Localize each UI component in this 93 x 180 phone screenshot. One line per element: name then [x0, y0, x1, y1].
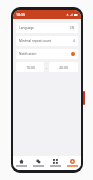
- staticText: 18:35: [16, 12, 25, 17]
- staticText: 10:00: [26, 65, 35, 70]
- button[interactable]: Settings: [64, 156, 81, 170]
- staticText: 4: [73, 39, 75, 43]
- button[interactable]: Minimal repeat count: [16, 36, 78, 46]
- button[interactable]: Two circles: [30, 156, 47, 170]
- staticText: -: [46, 65, 48, 70]
- button[interactable]: Home: [13, 156, 30, 170]
- staticText: Language: [19, 26, 70, 30]
- staticText: EN: [70, 26, 75, 30]
- staticText: Notification: [19, 52, 68, 56]
- button[interactable]: 10:00: [16, 62, 44, 72]
- button[interactable]: Grid: [47, 156, 64, 170]
- staticText: Minimal repeat count: [19, 39, 73, 43]
- button[interactable]: Notification: [16, 49, 78, 59]
- button[interactable]: Language: [16, 23, 78, 33]
- staticText: 20:00: [59, 65, 68, 70]
- button[interactable]: 20:00: [49, 62, 78, 72]
